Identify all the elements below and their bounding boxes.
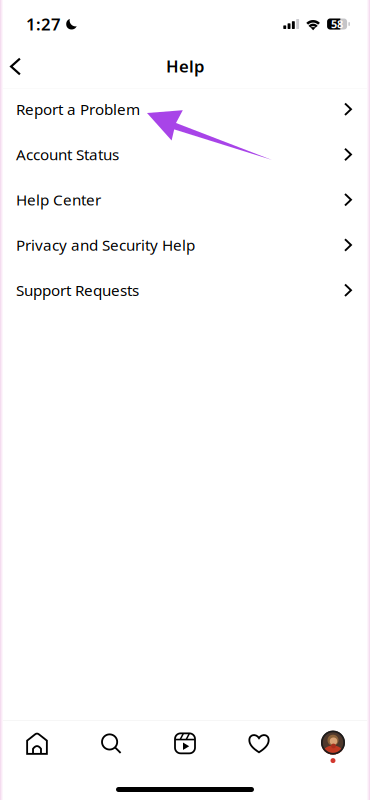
staticText: Help Center — [16, 189, 101, 210]
button[interactable]: Support Requests — [0, 270, 370, 315]
button[interactable]: Search — [74, 721, 148, 766]
button[interactable]: Activity — [222, 721, 296, 766]
button[interactable]: Back — [0, 44, 35, 88]
button[interactable]: Home — [0, 721, 74, 766]
staticText: Account Status — [16, 144, 119, 165]
staticText: 58 — [331, 17, 343, 31]
staticText: Support Requests — [16, 280, 139, 301]
staticText: Report a Problem — [16, 99, 140, 120]
staticText: 1:27 — [26, 13, 61, 35]
button[interactable]: Privacy and Security Help — [0, 224, 370, 269]
button[interactable]: Report a Problem — [0, 89, 370, 134]
staticText: Help — [166, 55, 204, 77]
button[interactable]: Account Status — [0, 134, 370, 179]
button[interactable]: Reels — [148, 721, 222, 766]
button[interactable]: Profile — [296, 721, 370, 766]
button[interactable]: Help Center — [0, 179, 370, 224]
staticText: Privacy and Security Help — [16, 235, 195, 255]
